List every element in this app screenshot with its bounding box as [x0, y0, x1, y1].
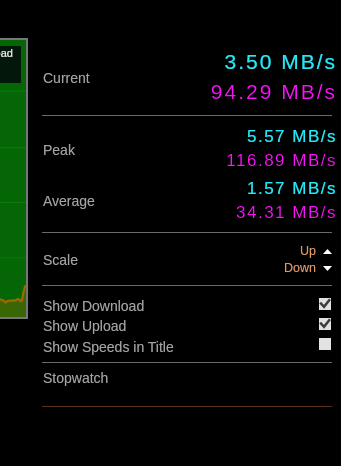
- staticText: Show Upload: [43, 318, 127, 334]
- staticText: 1.57 MB/s: [246, 179, 337, 198]
- staticText: Up: [300, 244, 316, 258]
- staticText: Current: [43, 70, 90, 86]
- staticText: Down: [284, 261, 316, 275]
- staticText: Peak: [43, 142, 75, 158]
- button[interactable]: Scale: [42, 233, 332, 284]
- staticText: 116.89 MB/s: [226, 151, 337, 170]
- button[interactable]: Current: [42, 38, 332, 114]
- staticText: 3.50 MB/s: [224, 50, 337, 73]
- staticText: Show Download: [43, 298, 145, 314]
- staticText: Download: [0, 47, 13, 59]
- staticText: 34.31 MB/s: [236, 203, 337, 222]
- button[interactable]: Stopwatch: [42, 366, 332, 396]
- other: Scale up: [323, 249, 332, 254]
- button[interactable]: Peak: [42, 116, 332, 178]
- button[interactable]: Average: [42, 178, 332, 231]
- staticText: Scale: [43, 252, 79, 268]
- staticText: 94.29 MB/s: [210, 80, 337, 103]
- staticText: 5.57 MB/s: [246, 127, 337, 146]
- staticText: Show Speeds in Title: [43, 339, 174, 355]
- staticText: Average: [43, 193, 95, 209]
- button[interactable]: Show Download: [42, 295, 332, 315]
- button[interactable]: Show Upload: [42, 315, 332, 335]
- staticText: Stopwatch: [43, 370, 109, 386]
- other: Scale down: [323, 266, 332, 271]
- button[interactable]: Show Speeds in Title: [42, 336, 332, 356]
